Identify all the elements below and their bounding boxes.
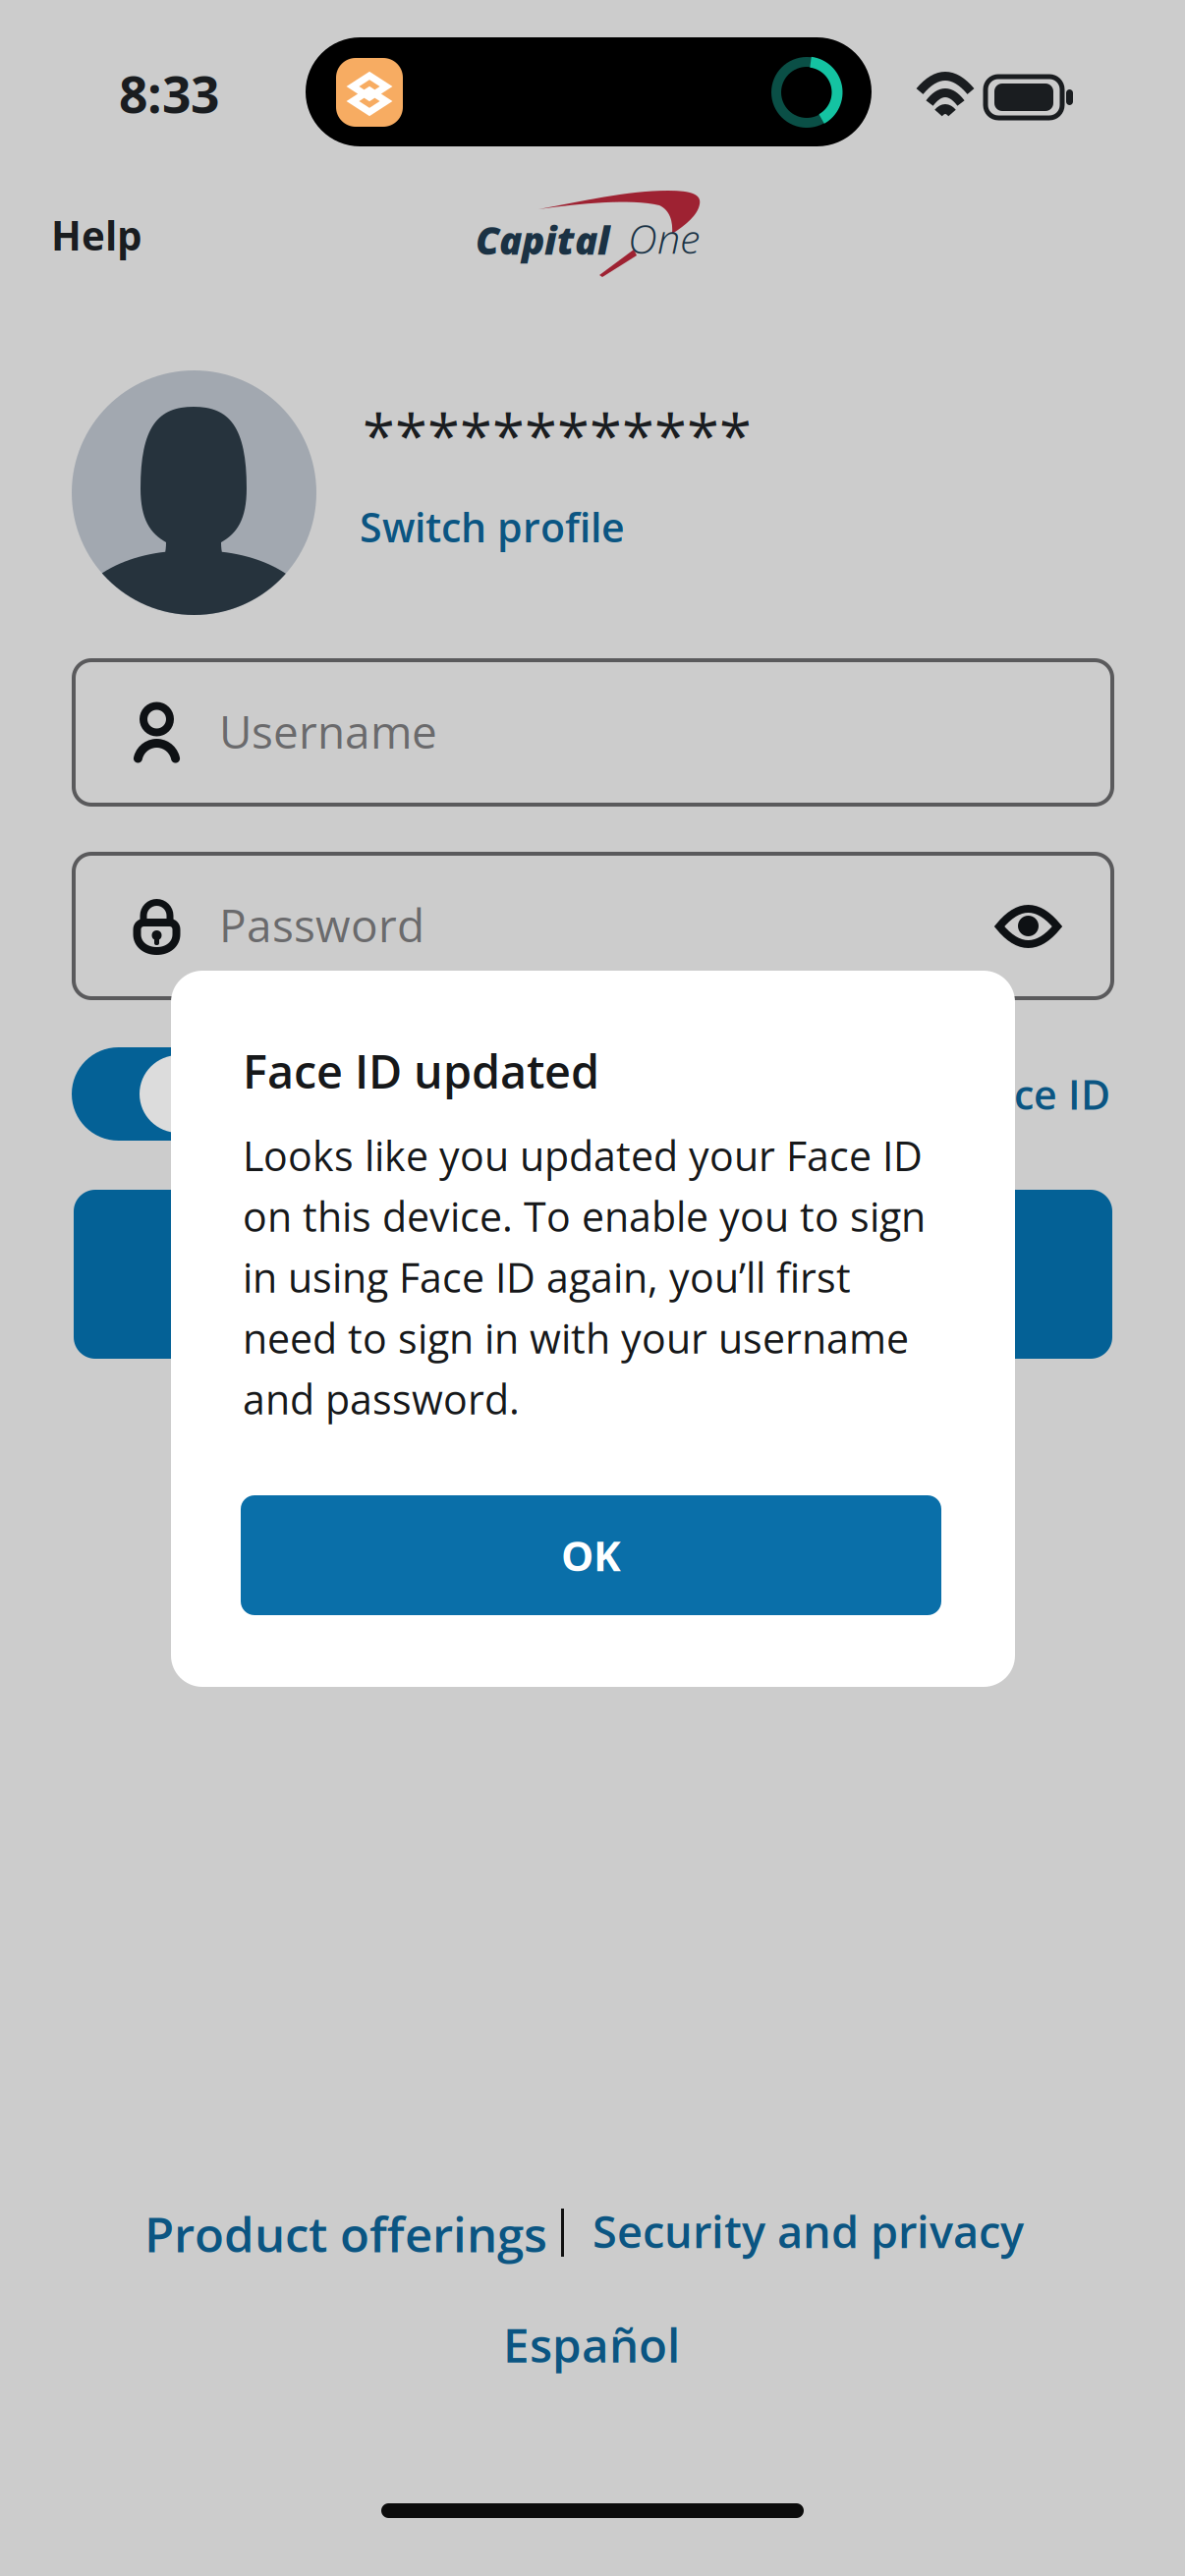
staticText: Security and privacy xyxy=(592,2201,1024,2261)
staticText: Help xyxy=(51,208,141,262)
button[interactable]: Forgot username or password? xyxy=(274,1413,911,1495)
button[interactable]: Password xyxy=(74,854,1112,998)
staticText: Password xyxy=(219,894,424,955)
staticText: Capital xyxy=(476,214,610,266)
button[interactable]: Security and privacy xyxy=(581,2189,1036,2273)
button[interactable]: Help xyxy=(37,195,155,276)
button[interactable]: Product offerings xyxy=(133,2189,559,2278)
staticText: Sign in with Face ID xyxy=(734,1066,1110,1121)
staticText: Switch profile xyxy=(360,499,625,554)
button[interactable]: Sign In xyxy=(74,1190,1112,1359)
button[interactable]: Switch profile xyxy=(348,485,637,568)
staticText: Product offerings xyxy=(144,2201,547,2266)
button[interactable]: Sign in with Face ID xyxy=(72,1047,1110,1141)
staticText: Looks like you updated your Face ID on t… xyxy=(243,1128,926,1426)
button[interactable]: OK xyxy=(241,1495,941,1615)
button[interactable]: Español xyxy=(491,2301,692,2388)
staticText: Sign In xyxy=(524,1245,662,1303)
staticText: OK xyxy=(561,1527,621,1583)
staticText: Username xyxy=(219,700,437,762)
staticText: One xyxy=(628,210,700,266)
staticText: ************ xyxy=(363,395,752,475)
staticText: 8:33 xyxy=(119,59,219,128)
staticText: Español xyxy=(503,2313,680,2376)
staticText: Face ID updated xyxy=(243,1039,599,1102)
button[interactable]: Show password xyxy=(974,872,1083,980)
button[interactable]: Username xyxy=(74,660,1112,805)
